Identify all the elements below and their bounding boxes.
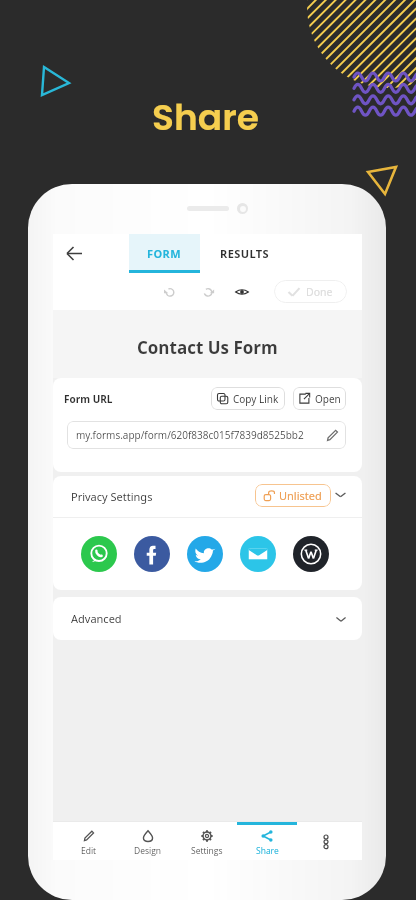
button[interactable]: Undo [155,273,183,310]
staticText: Copy Link [233,392,279,406]
button[interactable]: Back [58,234,90,273]
button[interactable]: my.forms.app/form/620f838c015f7839d8525b… [67,421,346,449]
button[interactable]: Copy Link [211,387,285,410]
staticText: RESULTS [220,246,270,261]
staticText: Privacy Settings [71,489,153,504]
staticText: Advanced [71,611,122,626]
staticText: my.forms.app/form/620f838c015f7839d8525b… [76,428,304,442]
button[interactable]: Done [274,280,347,303]
button[interactable]: Redo [193,273,221,310]
button[interactable]: Settings [177,822,237,860]
staticText: Open [315,392,341,406]
button[interactable]: FORM [129,234,200,273]
button[interactable]: Preview [228,273,256,310]
button[interactable]: Share [237,822,297,860]
button[interactable]: Edit [59,822,119,860]
staticText: Unlisted [279,488,322,503]
button[interactable]: WhatsApp [81,536,117,572]
staticText: FORM [147,246,182,261]
button[interactable]: Privacy Settings [53,476,362,517]
staticText: Done [306,285,333,299]
button[interactable]: More options [306,822,346,860]
staticText: Share [256,845,279,857]
button[interactable]: Unlisted [255,484,331,507]
other: Expand privacy settings [334,488,347,501]
staticText: Share [152,92,259,142]
staticText: Design [134,845,162,857]
button[interactable]: Email [240,536,276,572]
button[interactable]: Design [118,822,178,860]
button[interactable]: RESULTS [200,234,290,273]
staticText: Form URL [64,392,113,406]
staticText: Contact Us Form [137,336,278,359]
staticText: Settings [191,845,223,857]
button[interactable]: WordPress [293,536,329,572]
staticText: Edit [81,845,97,857]
button[interactable]: Open [293,387,346,410]
button[interactable]: Twitter [187,536,223,572]
button[interactable]: Advanced [53,597,362,640]
button[interactable]: Facebook [134,536,170,572]
